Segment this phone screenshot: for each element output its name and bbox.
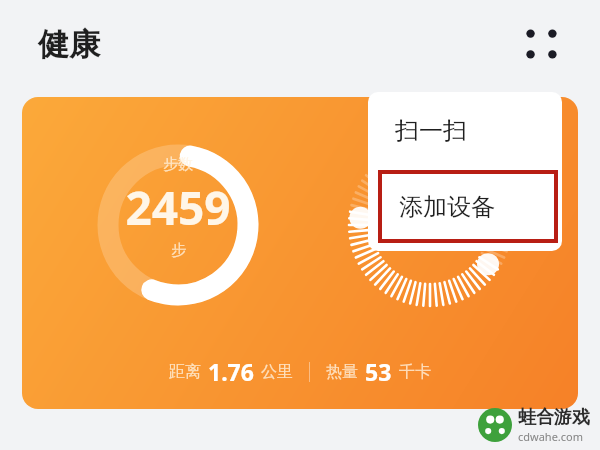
staticText: 公里 <box>261 362 293 382</box>
button[interactable]: 扫一扫 <box>368 92 562 170</box>
staticText: 热量 <box>326 362 358 382</box>
staticText: 健康 <box>38 25 100 64</box>
staticText: 53 <box>365 356 392 387</box>
staticText: 1.76 <box>208 356 254 387</box>
button[interactable]: More options <box>516 18 568 70</box>
staticText: 2459 <box>125 176 231 239</box>
staticText: 千卡 <box>399 362 431 382</box>
staticText: 步数 <box>163 155 193 174</box>
staticText: 添加设备 <box>399 192 495 222</box>
staticText: cdwahe.com <box>518 429 584 444</box>
staticText: 分钟 <box>406 209 436 228</box>
staticText: 步 <box>171 241 186 260</box>
button[interactable]: 添加设备 <box>382 174 554 239</box>
staticText: 扫一扫 <box>395 116 467 146</box>
staticText: 距离 <box>169 362 201 382</box>
staticText: 蛙合游戏 <box>518 406 590 429</box>
button[interactable]: 步数 <box>22 97 578 409</box>
